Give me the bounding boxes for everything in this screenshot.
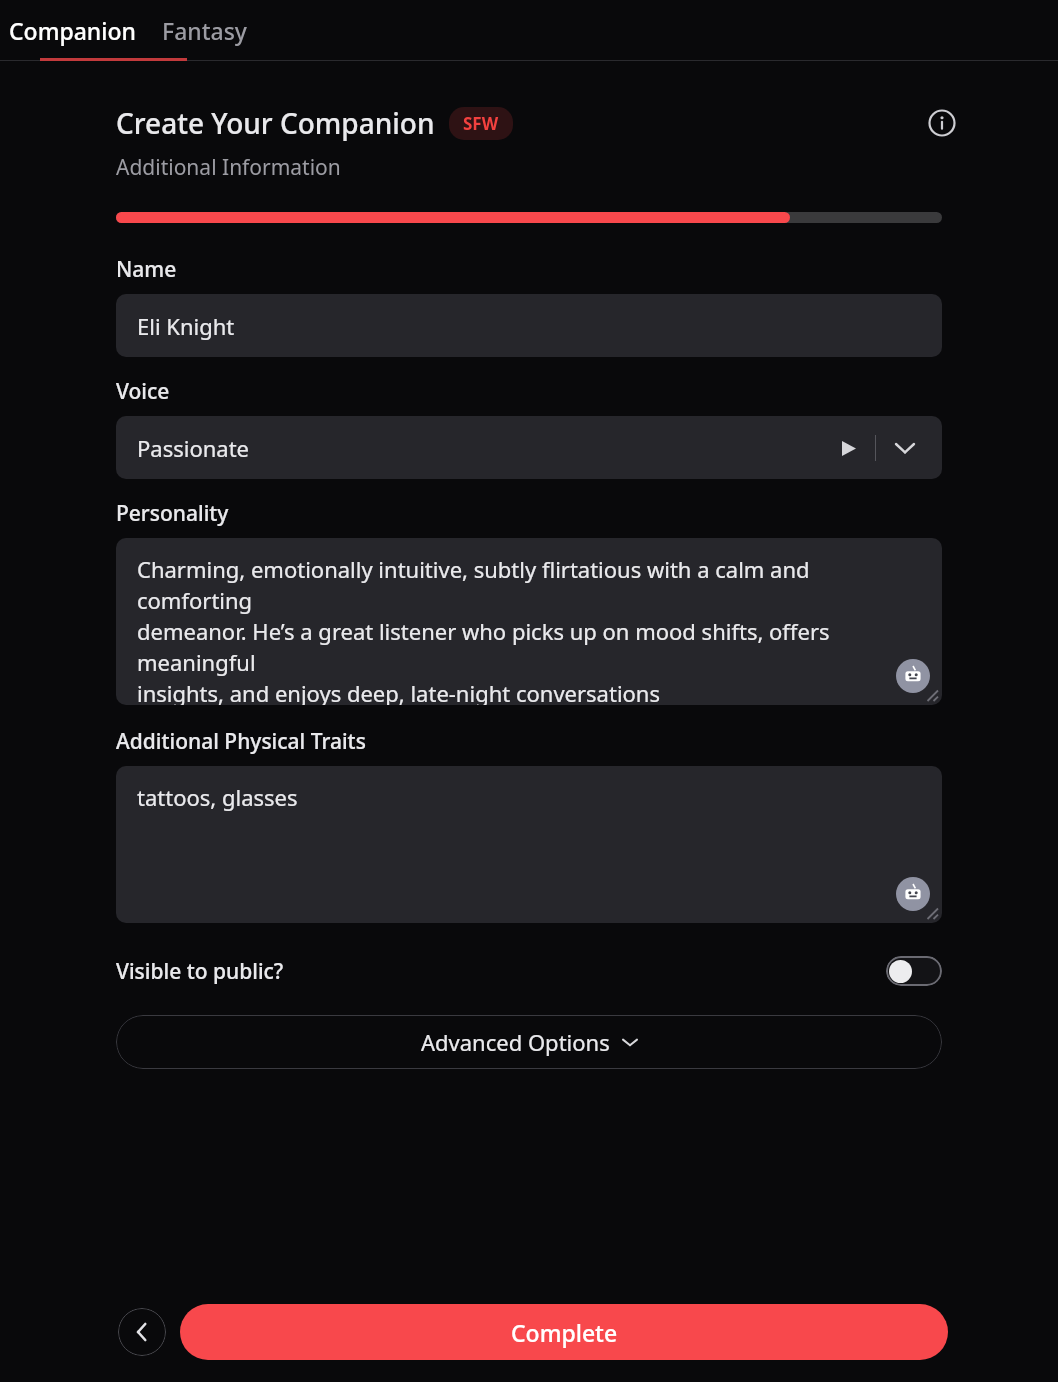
staticText: Advanced Options: [421, 1027, 610, 1057]
button[interactable]: Generate with AI: [896, 877, 930, 911]
button[interactable]: [116, 766, 942, 923]
staticText: Personality: [116, 499, 229, 528]
staticText: Complete: [511, 1317, 618, 1348]
staticText: Fantasy: [162, 15, 248, 46]
staticText: Voice: [116, 377, 170, 406]
staticText: insights, and enjoys deep, late-night co…: [137, 678, 661, 705]
button[interactable]: Play voice sample: [833, 433, 863, 463]
staticText: Additional Information: [116, 153, 341, 182]
staticText: SFW: [463, 112, 499, 135]
staticText: Additional Physical Traits: [116, 727, 366, 756]
staticText: demeanor. He’s a great listener who pick…: [137, 616, 926, 678]
staticText: Eli Knight: [137, 311, 235, 341]
staticText: Charming, emotionally intuitive, subtly …: [137, 554, 926, 616]
button[interactable]: Information: [922, 103, 962, 143]
staticText: Name: [116, 255, 177, 284]
button[interactable]: Fantasy: [145, 0, 265, 61]
staticText: Create Your Companion: [116, 104, 435, 142]
button[interactable]: Advanced Options: [116, 1015, 942, 1069]
button[interactable]: Complete: [180, 1304, 948, 1360]
button[interactable]: Visible to public toggle: [886, 956, 942, 986]
button[interactable]: [116, 538, 942, 705]
staticText: tattoos, glasses: [137, 782, 298, 812]
button[interactable]: Passionate: [116, 416, 942, 479]
staticText: Companion: [9, 15, 136, 46]
staticText: Visible to public?: [116, 957, 284, 986]
button[interactable]: Expand voice options: [890, 433, 920, 463]
staticText: Passionate: [137, 433, 250, 463]
button[interactable]: Generate with AI: [896, 659, 930, 693]
button[interactable]: Eli Knight: [116, 294, 942, 357]
button[interactable]: Back: [118, 1308, 166, 1356]
button[interactable]: Companion: [0, 0, 145, 61]
